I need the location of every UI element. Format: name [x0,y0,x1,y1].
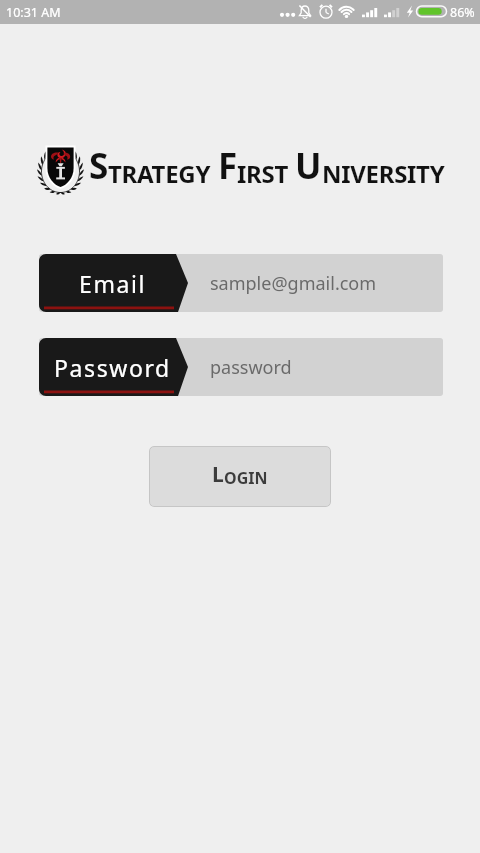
staticText: IRST [237,157,288,190]
staticText: S [89,142,108,190]
other: Strategy First University crest [37,145,85,193]
staticText: password [210,355,292,380]
staticText: sample@gmail.com [210,271,377,296]
staticText: TRATEGY [108,157,211,190]
button[interactable]: L [149,446,331,507]
staticText: 10:31 AM [6,4,61,21]
staticText: Email [79,268,147,299]
staticText: Password [54,352,171,383]
staticText: L [212,460,224,489]
staticText: OGIN [224,467,268,489]
button[interactable]: sample@gmail.com [39,254,443,312]
staticText: NIVERSITY [322,157,445,190]
staticText: F [218,142,237,190]
staticText: U [295,142,322,190]
button[interactable]: password [39,338,443,396]
staticText: 86% [450,4,475,21]
